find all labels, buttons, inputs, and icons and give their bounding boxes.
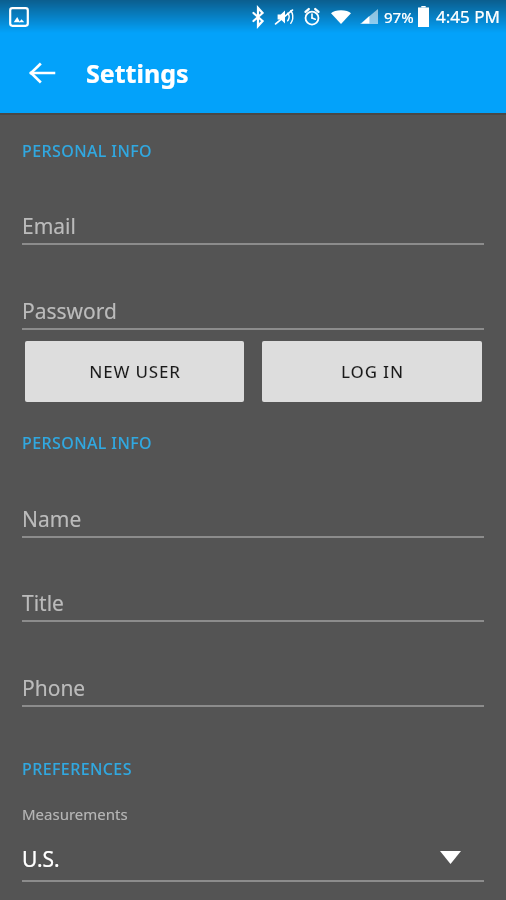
button[interactable]: NEW USER — [25, 341, 244, 402]
staticText: 4:45 PM — [436, 5, 500, 28]
button[interactable]: Password — [0, 289, 506, 331]
staticText: PREFERENCES — [22, 758, 132, 780]
button[interactable]: U.S. — [0, 833, 506, 885]
button[interactable]: Phone — [0, 666, 506, 708]
staticText: PERSONAL INFO — [22, 432, 153, 454]
staticText: LOG IN — [341, 360, 404, 383]
button[interactable]: Title — [0, 581, 506, 623]
staticText: NEW USER — [89, 360, 181, 383]
staticText: Settings — [86, 56, 189, 90]
staticText: U.S. — [22, 845, 60, 874]
button[interactable]: Email — [0, 204, 506, 246]
staticText: Email — [22, 212, 76, 241]
staticText: 97% — [384, 7, 414, 27]
staticText: Phone — [22, 674, 86, 703]
staticText: Name — [22, 505, 82, 534]
staticText: Password — [22, 297, 117, 326]
staticText: Title — [22, 589, 64, 618]
staticText: Measurements — [22, 804, 128, 824]
button[interactable]: LOG IN — [262, 341, 482, 402]
button[interactable]: Back — [16, 47, 68, 99]
button[interactable]: Name — [0, 497, 506, 539]
staticText: PERSONAL INFO — [22, 140, 153, 162]
